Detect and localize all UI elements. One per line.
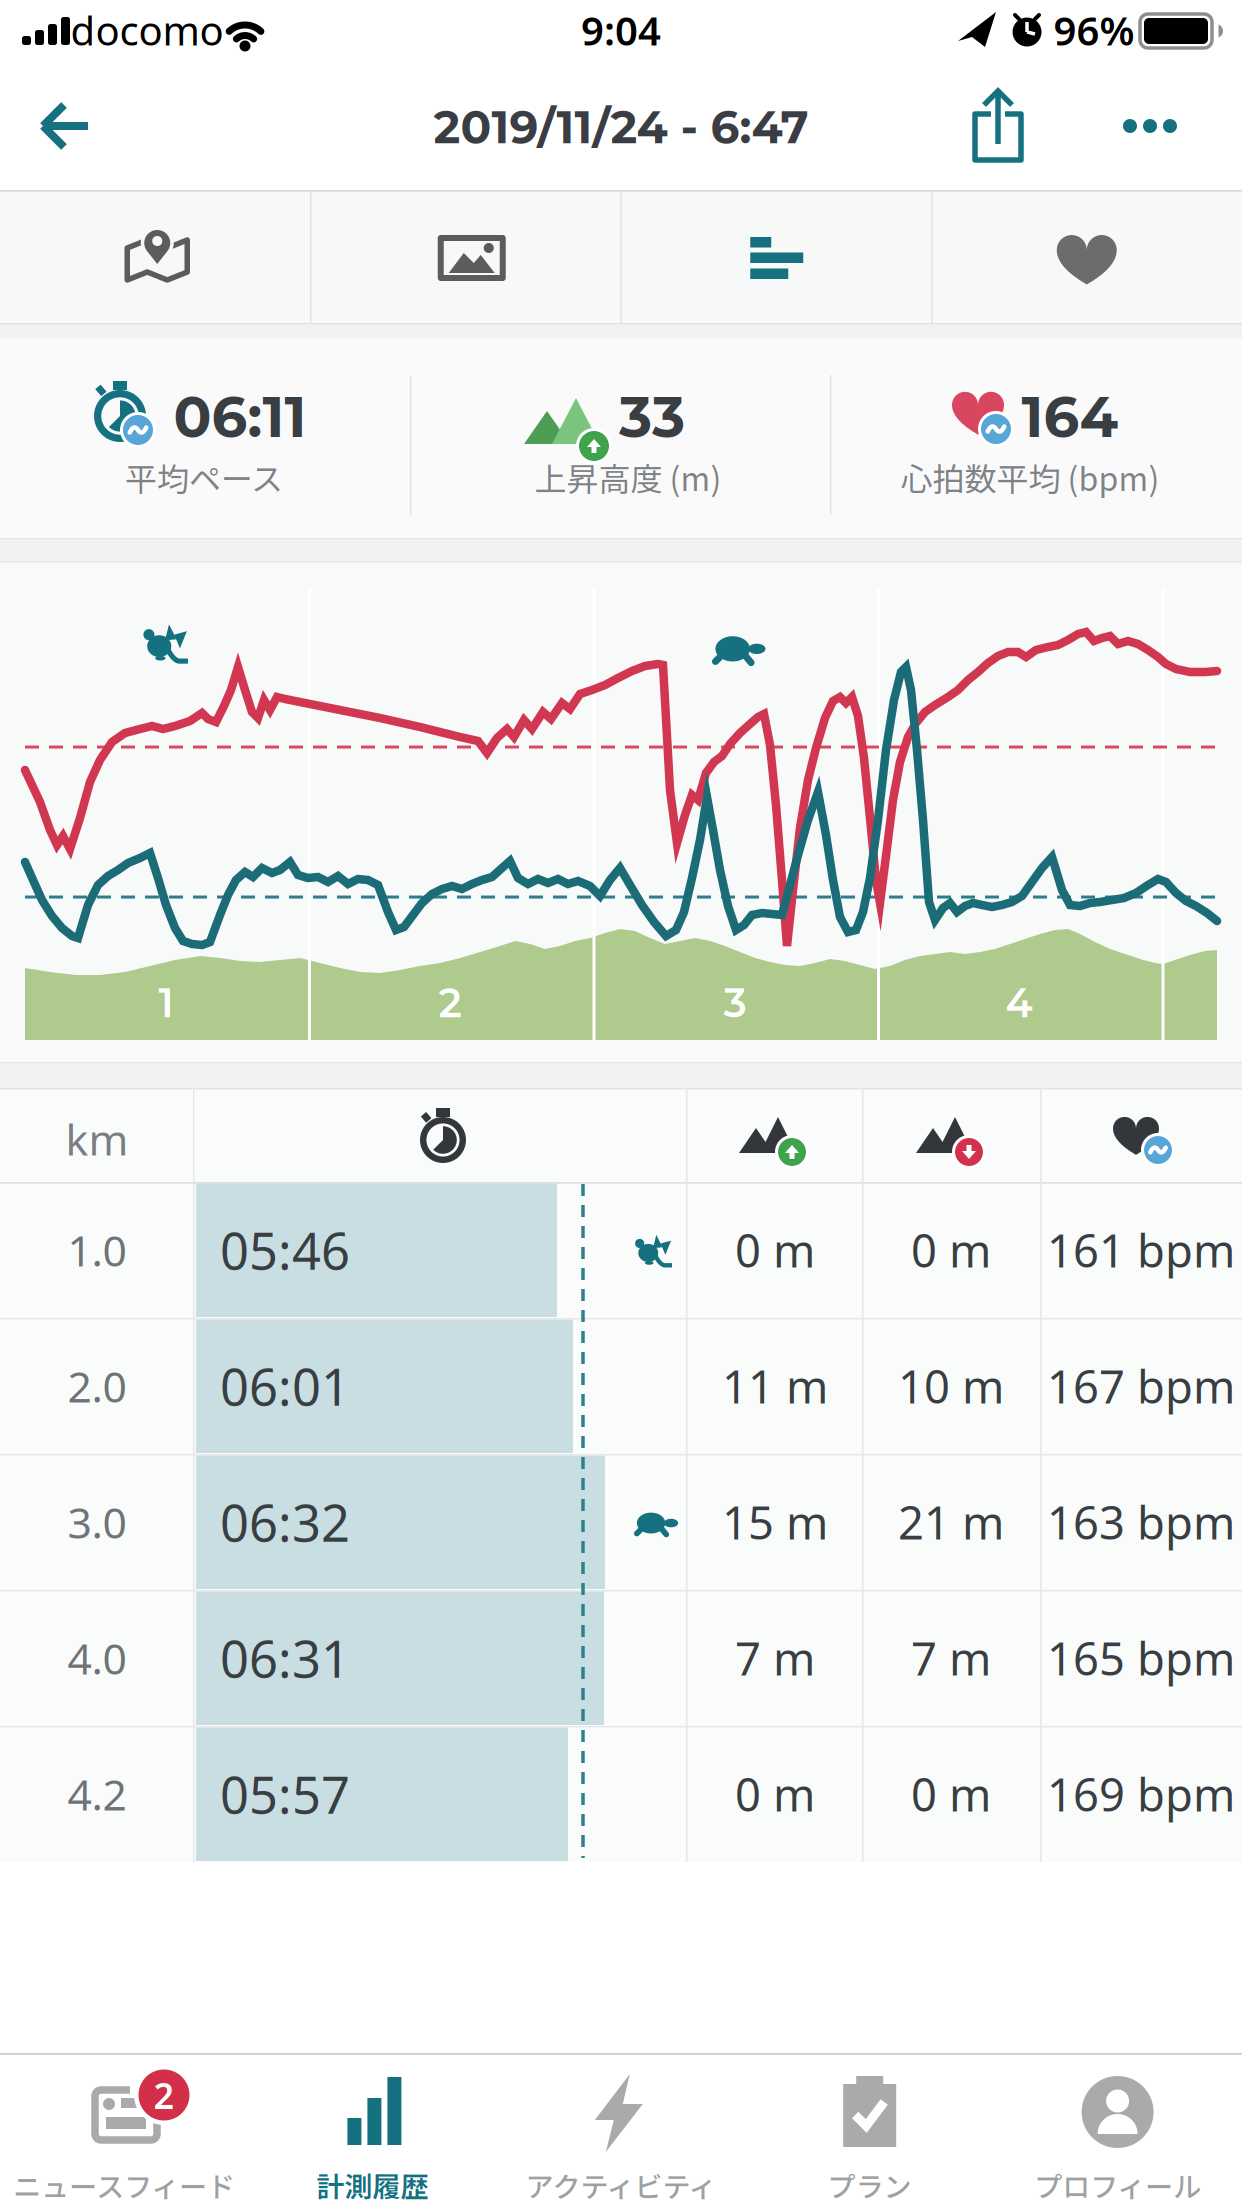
button[interactable]: プラン	[745, 2054, 994, 2208]
staticText: 161 bpm	[1047, 1220, 1235, 1280]
staticText: 1.0	[67, 1222, 126, 1278]
button[interactable]: Photos	[311, 192, 621, 323]
staticText: 06:11	[173, 383, 306, 451]
staticText: 7 m	[735, 1628, 815, 1688]
staticText: 7 m	[911, 1628, 991, 1688]
staticText: 11 m	[722, 1356, 828, 1416]
button[interactable]: Back	[22, 81, 112, 171]
button[interactable]: 2	[0, 2054, 248, 2208]
staticText: 0 m	[735, 1220, 815, 1280]
staticText: 164	[1021, 383, 1118, 451]
staticText: 167 bpm	[1047, 1356, 1235, 1416]
staticText: 3	[723, 979, 746, 1027]
button[interactable]: More	[1100, 96, 1200, 156]
button[interactable]: Share	[953, 69, 1043, 173]
staticText: 2	[153, 2071, 174, 2119]
staticText: 05:46	[220, 1216, 350, 1284]
staticText: 96%	[1053, 3, 1134, 56]
staticText: ニュースフィード	[13, 2165, 235, 2205]
staticText: 06:01	[220, 1352, 350, 1420]
staticText: 4.2	[67, 1766, 126, 1822]
staticText: プロフィール	[1034, 2165, 1201, 2205]
staticText: 05:57	[220, 1760, 350, 1828]
button[interactable]: Heart rate	[932, 192, 1242, 323]
staticText: 21 m	[898, 1492, 1004, 1552]
staticText: 0 m	[735, 1764, 815, 1824]
staticText: 1	[158, 979, 173, 1027]
staticText: 33	[619, 383, 685, 451]
staticText: 4	[1005, 979, 1032, 1027]
button[interactable]: プロフィール	[994, 2054, 1242, 2208]
staticText: km	[65, 1111, 128, 1167]
staticText: 163 bpm	[1047, 1492, 1235, 1552]
staticText: 2	[438, 979, 461, 1027]
staticText: 2.0	[67, 1358, 126, 1414]
staticText: 10 m	[898, 1356, 1004, 1416]
staticText: 06:31	[220, 1624, 350, 1692]
staticText: 2019/11/24 - 6:47	[433, 99, 808, 155]
staticText: プラン	[827, 2165, 911, 2205]
staticText: 計測履歴	[317, 2165, 429, 2205]
button[interactable]: アクティビティ	[497, 2054, 745, 2208]
staticText: 平均ペース	[125, 454, 283, 500]
staticText: 心拍数平均 (bpm)	[900, 454, 1159, 500]
staticText: 3.0	[67, 1494, 126, 1550]
staticText: アクティビティ	[525, 2165, 716, 2205]
staticText: 06:32	[220, 1488, 350, 1556]
staticText: 165 bpm	[1047, 1628, 1235, 1688]
button[interactable]: Map	[0, 192, 310, 323]
staticText: 4.0	[67, 1630, 126, 1686]
staticText: 15 m	[722, 1492, 828, 1552]
staticText: 0 m	[911, 1220, 991, 1280]
staticText: 0 m	[911, 1764, 991, 1824]
button[interactable]: 計測履歴	[248, 2054, 497, 2208]
staticText: 9:04	[581, 3, 661, 56]
staticText: 169 bpm	[1047, 1764, 1235, 1824]
staticText: docomo	[70, 3, 223, 56]
button[interactable]: Stats	[621, 192, 931, 323]
staticText: 上昇高度 (m)	[534, 454, 721, 500]
